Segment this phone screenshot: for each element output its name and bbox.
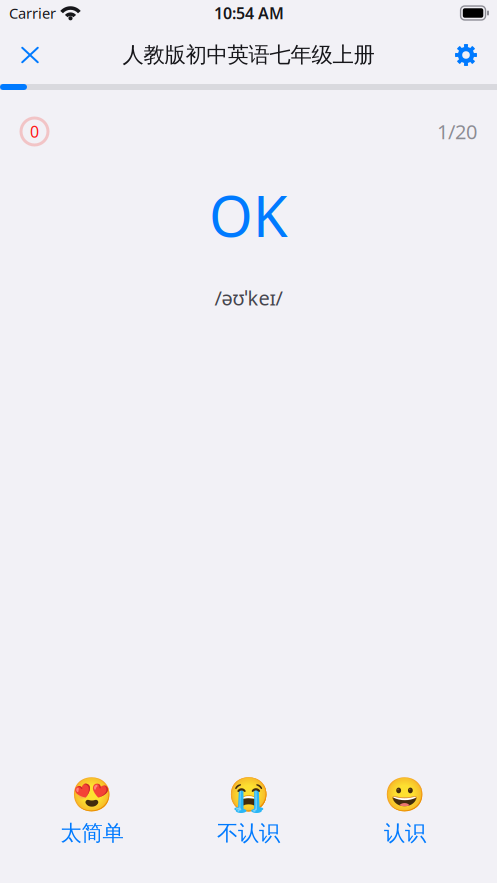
staticText: /əʊˈkeɪ/ [214,284,282,311]
staticText: 认识 [384,820,426,846]
button[interactable]: 太简单 [36,779,148,843]
button[interactable]: 错题 0 [21,118,48,145]
staticText: 0 [30,121,39,142]
staticText: Carrier [9,3,56,23]
staticText: 😭 [227,776,269,814]
button[interactable]: Close [8,33,52,77]
staticText: 太简单 [60,820,123,846]
staticText: 不认识 [217,820,280,846]
staticText: 人教版初中英语七年级上册 [122,42,374,68]
staticText: 😀 [384,776,426,814]
staticText: 😍 [71,776,113,814]
staticText: 10:54 AM [214,2,284,24]
staticText: 1/20 [437,118,477,145]
staticText: OK [209,178,288,252]
button[interactable]: Settings [444,33,488,77]
button[interactable]: 认识 [349,779,461,843]
button[interactable]: 不认识 [192,779,304,843]
